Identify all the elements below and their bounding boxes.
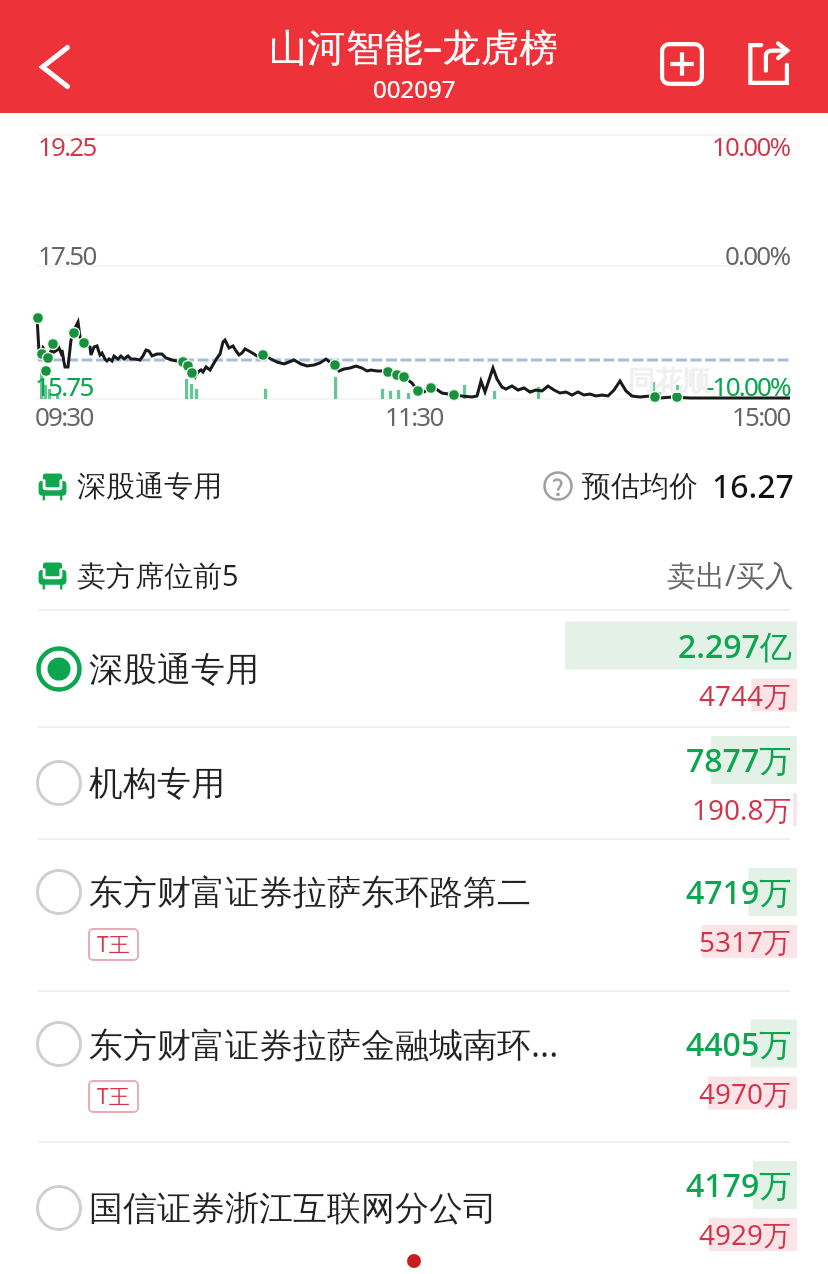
- staticText: 深股通专用: [89, 648, 259, 691]
- staticText: 4929万: [699, 1215, 792, 1253]
- button[interactable]: Share: [736, 32, 800, 96]
- staticText: 4970万: [699, 1074, 792, 1112]
- staticText: 国信证券浙江互联网分公司: [89, 1187, 497, 1230]
- staticText: 机构专用: [89, 762, 225, 805]
- staticText: 4719万: [686, 870, 792, 914]
- staticText: 4405万: [686, 1022, 792, 1066]
- staticText: 002097: [373, 72, 456, 105]
- staticText: 15:00: [732, 398, 790, 433]
- staticText: 15.75: [35, 368, 93, 403]
- staticText: 卖出/买入: [667, 555, 794, 595]
- staticText: 同花顺: [628, 364, 709, 398]
- staticText: 4179万: [686, 1163, 792, 1207]
- staticText: 7877万: [686, 738, 792, 782]
- button[interactable]: Add to watchlist: [650, 32, 714, 96]
- staticText: 深股通专用: [77, 468, 222, 505]
- staticText: 16.27: [712, 464, 794, 508]
- button[interactable]: 深股通专用: [0, 611, 828, 726]
- button[interactable]: 国信证券浙江互联网分公司: [0, 1143, 828, 1273]
- staticText: 山河智能–龙虎榜: [269, 20, 559, 72]
- staticText: 预估均价: [582, 468, 698, 505]
- staticText: 4744万: [699, 676, 792, 714]
- button[interactable]: Back: [10, 12, 100, 102]
- staticText: 190.8万: [692, 790, 792, 828]
- staticText: 17.50: [38, 237, 96, 272]
- button[interactable]: 东方财富证券拉萨东环路第二: [0, 840, 828, 990]
- staticText: 东方财富证券拉萨金融城南环...: [89, 1021, 559, 1067]
- staticText: 5317万: [699, 922, 792, 960]
- staticText: 10.00%: [712, 128, 790, 163]
- staticText: -10.00%: [706, 368, 790, 403]
- staticText: T王: [97, 1082, 130, 1111]
- button[interactable]: 东方财富证券拉萨金融城南环...: [0, 992, 828, 1141]
- staticText: 2.297亿: [678, 624, 792, 668]
- staticText: T王: [97, 930, 130, 959]
- staticText: 0.00%: [725, 237, 790, 272]
- staticText: 卖方席位前5: [77, 555, 239, 595]
- staticText: 19.25: [38, 128, 96, 163]
- staticText: 东方财富证券拉萨东环路第二: [89, 871, 531, 914]
- staticText: 09:30: [35, 398, 93, 433]
- staticText: 11:30: [385, 398, 443, 433]
- button[interactable]: 机构专用: [0, 728, 828, 838]
